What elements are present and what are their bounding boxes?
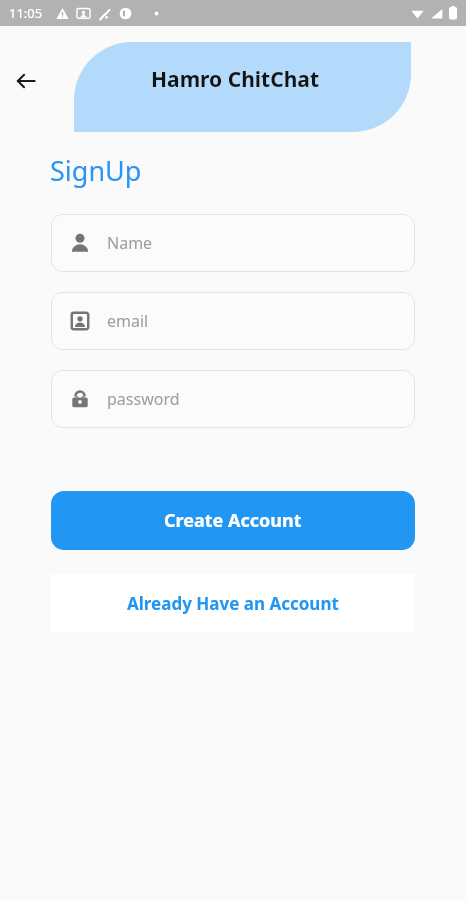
button[interactable]: password [51, 370, 415, 428]
button[interactable]: Name [51, 214, 415, 272]
button[interactable]: Create Account [51, 491, 415, 550]
staticText: password [107, 388, 180, 410]
button[interactable]: Back [4, 59, 48, 103]
staticText: Name [107, 232, 153, 254]
staticText: Already Have an Account [127, 592, 339, 615]
staticText: 11:05 [9, 4, 43, 22]
button[interactable]: Already Have an Account [51, 574, 415, 632]
staticText: Hamro ChitChat [151, 65, 320, 94]
staticText: email [107, 310, 149, 332]
staticText: SignUp [50, 152, 142, 189]
staticText: Create Account [164, 508, 302, 533]
button[interactable]: email [51, 292, 415, 350]
